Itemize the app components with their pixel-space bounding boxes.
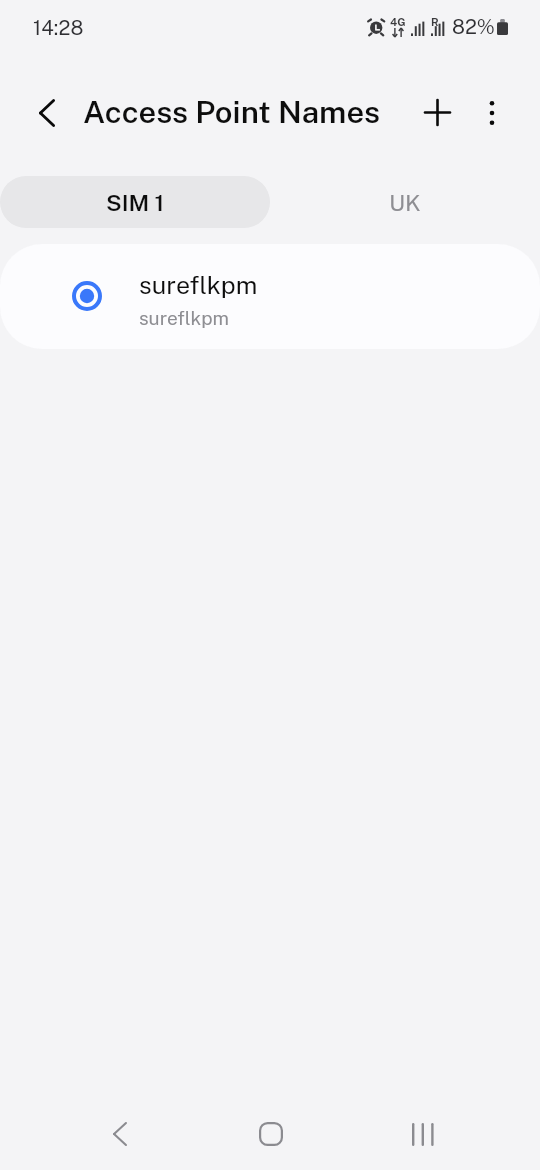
button[interactable]: Recent apps (349, 1095, 499, 1170)
button[interactable]: UK (270, 176, 540, 228)
button[interactable]: Back (45, 1095, 195, 1170)
staticText: UK (389, 189, 421, 216)
button[interactable]: Navigate up (20, 86, 73, 139)
staticText: sureflkpm (139, 307, 229, 329)
button[interactable]: Home (196, 1095, 346, 1170)
button[interactable]: SIM 1 (0, 176, 270, 228)
staticText: 82% (452, 15, 495, 39)
button[interactable]: Add APN (411, 86, 464, 139)
staticText: sureflkpm (139, 270, 258, 299)
staticText: Access Point Names (83, 94, 381, 130)
button[interactable]: More options (465, 86, 518, 139)
button[interactable]: sureflkpm (0, 244, 540, 349)
staticText: SIM 1 (106, 189, 165, 216)
staticText: 4G (390, 16, 406, 29)
staticText: 14:28 (33, 16, 84, 40)
staticText: R (431, 16, 439, 29)
